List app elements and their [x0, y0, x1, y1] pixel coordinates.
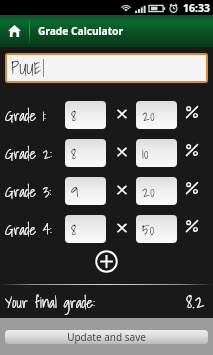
button[interactable]: 8 — [65, 101, 106, 129]
staticText: PUUE — [11, 55, 42, 81]
button[interactable]: Add grade — [93, 248, 120, 275]
staticText: 8 — [71, 103, 77, 128]
button[interactable]: 50 — [136, 215, 177, 243]
button[interactable]: PUUE — [7, 55, 206, 81]
button[interactable]: 8 — [65, 139, 106, 167]
staticText: 10 — [142, 141, 149, 166]
button[interactable]: 9 — [65, 177, 106, 205]
staticText: 8.2 — [186, 286, 205, 317]
button[interactable]: 8 — [65, 215, 106, 243]
button[interactable]: 20 — [136, 177, 177, 205]
button[interactable]: 20 — [136, 101, 177, 129]
staticText: 20 — [142, 179, 155, 204]
staticText: 16:33 — [183, 1, 210, 15]
staticText: Grade 2: — [5, 142, 52, 165]
staticText: Update and save — [67, 330, 146, 344]
staticText: 8 — [71, 141, 77, 166]
staticText: Grade 1: — [5, 104, 47, 127]
staticText: 8 — [71, 217, 77, 242]
button[interactable]: Update and save — [5, 330, 208, 344]
staticText: 9 — [71, 179, 79, 204]
button[interactable]: Home — [0, 15, 29, 47]
staticText: Grade 3: — [5, 180, 52, 203]
button[interactable]: 10 — [136, 139, 177, 167]
staticText: 20 — [142, 103, 155, 128]
staticText: Grade Calculator — [38, 24, 124, 38]
staticText: Your final grade: — [5, 290, 95, 314]
staticText: Grade 4: — [5, 218, 52, 241]
staticText: 50 — [142, 217, 155, 242]
